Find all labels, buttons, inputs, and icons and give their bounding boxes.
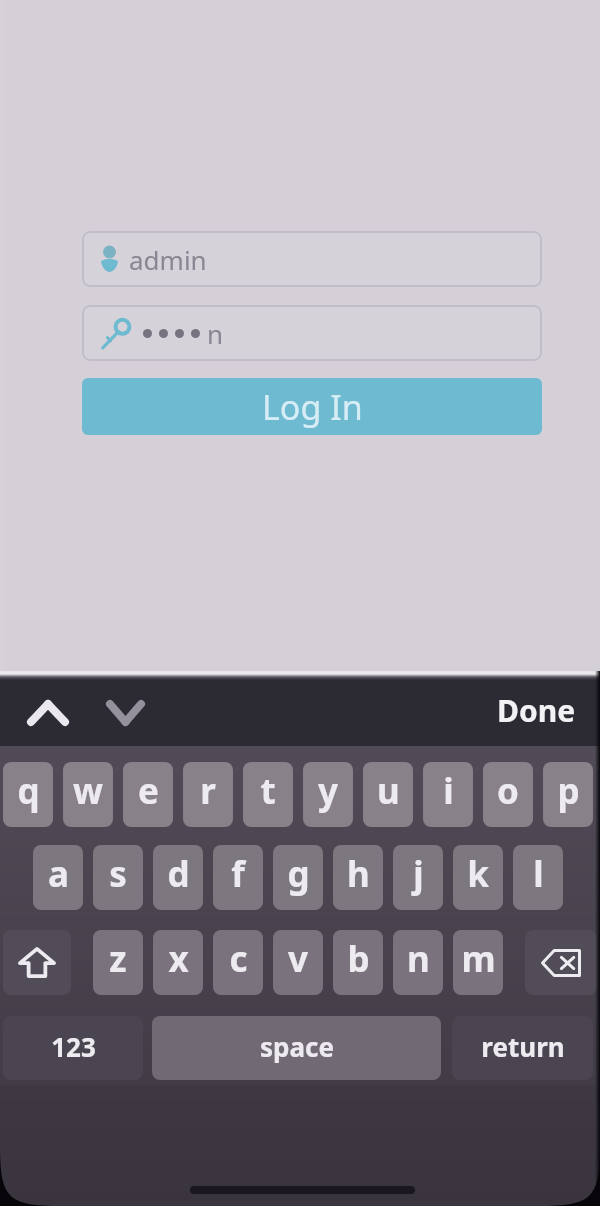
staticText: y [318,767,338,815]
button[interactable]: n [393,930,443,995]
button[interactable]: e [123,762,173,827]
staticText: j [413,850,424,898]
button[interactable]: g [273,845,323,910]
staticText: n [407,935,430,983]
button[interactable]: admin [82,231,542,287]
staticText: t [260,767,276,815]
button[interactable]: n [82,305,542,361]
staticText: h [347,850,370,898]
staticText: p [557,767,580,815]
staticText: v [288,935,308,983]
button[interactable]: Done [497,690,576,731]
staticText: Log In [262,384,363,430]
button[interactable]: a [33,845,83,910]
button[interactable]: x [153,930,203,995]
button[interactable]: y [303,762,353,827]
button[interactable]: k [453,845,503,910]
staticText: q [17,767,40,815]
staticText: s [109,850,127,898]
button[interactable]: 123 [3,1016,143,1080]
staticText: 123 [51,1029,96,1064]
staticText: x [168,935,189,983]
button[interactable]: Log In [82,378,542,435]
staticText: return [481,1029,565,1064]
staticText: k [467,850,489,898]
button[interactable]: space [152,1016,441,1080]
button[interactable]: z [93,930,143,995]
button[interactable]: q [3,762,53,827]
button[interactable]: o [483,762,533,827]
button[interactable]: p [543,762,593,827]
staticText: f [231,850,245,898]
button[interactable]: r [183,762,233,827]
staticText: space [260,1029,334,1064]
button[interactable]: u [363,762,413,827]
button[interactable]: f [213,845,263,910]
staticText: e [138,767,159,815]
button[interactable]: Previous field [16,680,80,746]
button[interactable]: i [423,762,473,827]
staticText: a [48,850,69,898]
button[interactable]: Next field [93,680,157,746]
staticText: d [167,850,190,898]
staticText: admin [129,242,207,277]
button[interactable]: c [213,930,263,995]
button[interactable]: m [453,930,503,995]
button[interactable]: Backspace [525,930,597,995]
staticText: Done [497,690,576,731]
staticText: i [443,767,454,815]
staticText: n [207,316,224,351]
button[interactable]: d [153,845,203,910]
button[interactable]: l [513,845,563,910]
staticText: w [73,767,103,815]
staticText: o [497,767,519,815]
staticText: r [200,767,216,815]
button[interactable]: j [393,845,443,910]
staticText: m [461,935,496,983]
staticText: u [377,767,400,815]
staticText: l [533,850,544,898]
button[interactable]: return [452,1016,593,1080]
staticText: b [347,935,370,983]
button[interactable]: w [63,762,113,827]
button[interactable]: b [333,930,383,995]
button[interactable]: v [273,930,323,995]
button[interactable]: Shift [3,930,71,995]
staticText: z [109,935,127,983]
button[interactable]: h [333,845,383,910]
button[interactable]: s [93,845,143,910]
staticText: c [229,935,248,983]
staticText: g [287,850,310,898]
button[interactable]: t [243,762,293,827]
